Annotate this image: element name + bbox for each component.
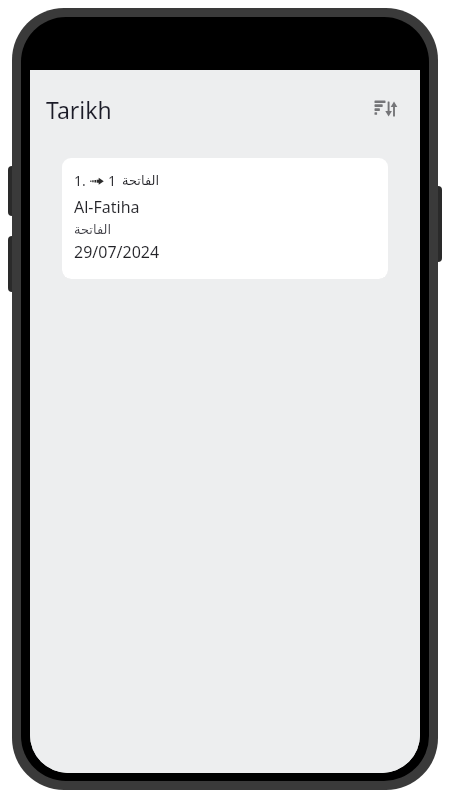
staticText: 1. (74, 171, 86, 190)
staticText: Al-Fatiha (74, 196, 140, 218)
staticText: 29/07/2024 (74, 241, 160, 263)
staticText: 1 (108, 171, 117, 190)
staticText: Tarikh (46, 94, 112, 125)
button[interactable]: 1. (62, 158, 388, 279)
staticText: الفاتحة (74, 222, 112, 237)
staticText: الفاتحة (122, 173, 160, 188)
button[interactable]: Sort (368, 92, 402, 126)
